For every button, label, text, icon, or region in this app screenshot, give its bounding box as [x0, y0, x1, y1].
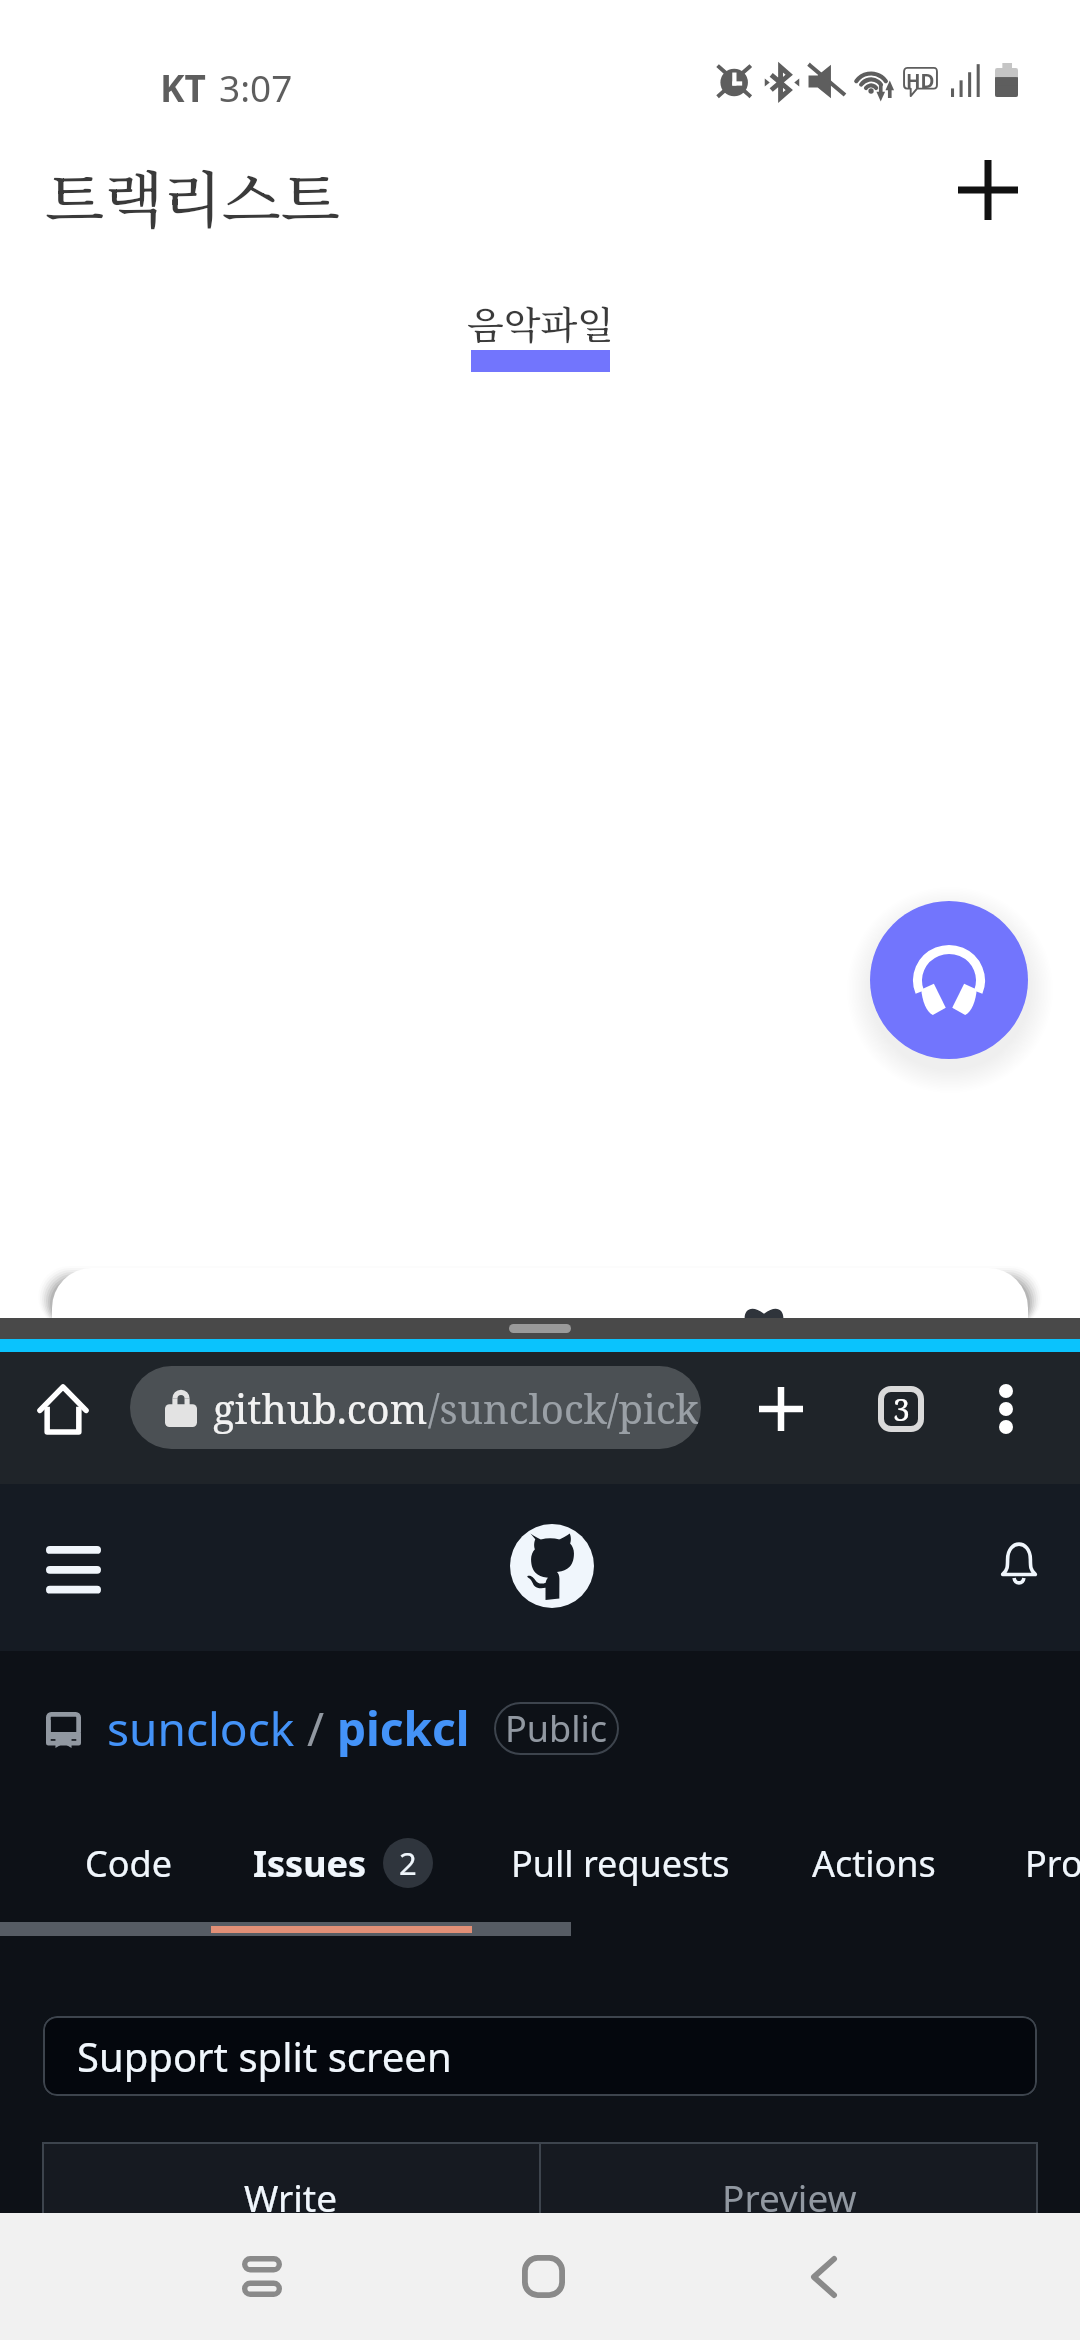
- staticText: HD: [906, 68, 935, 94]
- button[interactable]: Pull requests: [484, 1834, 756, 1892]
- button[interactable]: Home page: [24, 1370, 102, 1448]
- button[interactable]: Play music: [870, 901, 1028, 1059]
- button[interactable]: Add: [940, 142, 1036, 238]
- button[interactable]: Preview: [541, 2142, 1038, 2262]
- staticText: /sunclock/pickl: [428, 1381, 701, 1435]
- staticText: Actions: [812, 1839, 936, 1888]
- button[interactable]: Notifications: [980, 1524, 1058, 1602]
- staticText: 음악파일: [467, 295, 614, 350]
- staticText: /: [295, 1697, 337, 1760]
- button[interactable]: 음악파일: [400, 280, 680, 390]
- staticText: Write: [244, 2172, 338, 2222]
- staticText: KT: [160, 62, 206, 112]
- button[interactable]: New tab: [745, 1373, 817, 1445]
- button[interactable]: Open tabs: 3: [865, 1373, 937, 1445]
- button[interactable]: [52, 1268, 1028, 1318]
- staticText: sunclock: [107, 1697, 295, 1760]
- staticText: github.com: [213, 1381, 428, 1435]
- staticText: Public: [505, 1704, 608, 1753]
- button[interactable]: More options: [970, 1373, 1042, 1445]
- button[interactable]: Menu: [27, 1524, 119, 1616]
- button[interactable]: sunclock: [46, 1696, 619, 1760]
- button[interactable]: Actions: [783, 1834, 965, 1892]
- button[interactable]: Issues: [253, 1834, 451, 1892]
- button[interactable]: Back: [744, 2213, 904, 2340]
- button[interactable]: Support split screen: [43, 2016, 1037, 2096]
- staticText: 3:07: [219, 62, 293, 112]
- staticText: 2: [399, 1842, 417, 1884]
- staticText: Support split screen: [77, 2029, 452, 2083]
- staticText: Projects: [1025, 1839, 1080, 1888]
- staticText: Preview: [722, 2172, 857, 2222]
- staticText: pickcl: [337, 1697, 470, 1760]
- staticText: Code: [85, 1839, 172, 1888]
- button[interactable]: Home: [463, 2213, 623, 2340]
- staticText: 3: [893, 1389, 910, 1430]
- staticText: Pull requests: [511, 1839, 730, 1888]
- button[interactable]: github.com: [130, 1366, 701, 1449]
- button[interactable]: Recents: [182, 2213, 342, 2340]
- button[interactable]: Code: [60, 1834, 196, 1892]
- button[interactable]: Write: [42, 2142, 539, 2262]
- staticText: Issues: [253, 1839, 367, 1888]
- staticText: 트랙리스트: [45, 152, 340, 240]
